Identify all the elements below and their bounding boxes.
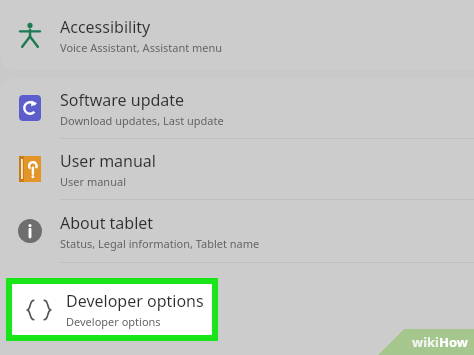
staticText: Accessibility — [60, 16, 151, 38]
staticText: Developer options — [66, 290, 204, 312]
staticText: Developer options — [60, 300, 155, 315]
button[interactable]: Developer options — [0, 263, 474, 327]
button[interactable]: User manual — [0, 139, 474, 199]
button[interactable]: Accessibility — [0, 0, 474, 70]
staticText: Voice Assistant, Assistant menu — [60, 40, 223, 55]
other: Software update — [19, 95, 41, 121]
button[interactable]: Developer options — [12, 284, 212, 335]
staticText: Status, Legal information, Tablet name — [60, 236, 260, 251]
other: Developer options — [17, 284, 43, 306]
other: Developer options — [26, 299, 52, 321]
other: About tablet — [18, 219, 42, 243]
staticText: wiki — [412, 333, 439, 351]
staticText: Software update — [60, 89, 185, 111]
staticText: Developer options — [60, 276, 198, 298]
staticText: Developer options — [66, 314, 161, 329]
staticText: User manual — [60, 150, 156, 172]
other: Accessibility — [17, 22, 43, 48]
staticText: User manual — [60, 174, 126, 189]
other: User manual — [19, 156, 41, 182]
button[interactable]: About tablet — [0, 200, 474, 262]
staticText: About tablet — [60, 212, 154, 234]
staticText: How — [439, 333, 468, 351]
button[interactable]: Software update — [0, 78, 474, 138]
staticText: Download updates, Last update — [60, 113, 224, 128]
